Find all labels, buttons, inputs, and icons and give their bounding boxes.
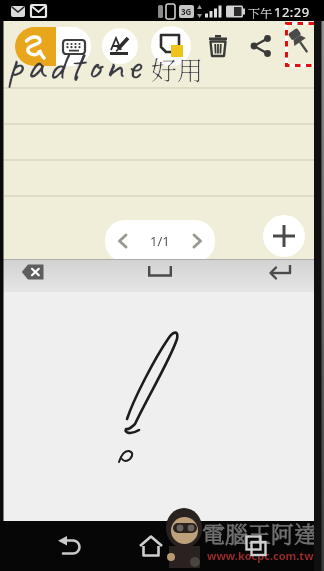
button[interactable]: 1/1 — [105, 220, 215, 262]
staticText: 電腦王阿達 — [202, 517, 317, 550]
button[interactable] — [243, 28, 278, 63]
button[interactable] — [14, 257, 52, 287]
button[interactable] — [260, 256, 300, 286]
button[interactable] — [151, 26, 191, 66]
button[interactable] — [263, 215, 305, 257]
button[interactable] — [15, 27, 56, 66]
button[interactable] — [285, 22, 318, 67]
button[interactable] — [236, 525, 276, 567]
staticText: 3G — [181, 6, 192, 17]
staticText: 12:29 — [274, 3, 310, 21]
button[interactable] — [48, 525, 88, 567]
button[interactable] — [200, 28, 235, 63]
staticText: padtone — [7, 40, 145, 92]
button[interactable] — [131, 525, 171, 567]
button[interactable] — [56, 27, 91, 66]
button[interactable] — [138, 256, 182, 286]
staticText: 下午 — [248, 4, 273, 21]
staticText: www.kocpc.com.tw — [207, 548, 314, 563]
button[interactable] — [102, 28, 138, 64]
staticText: 1/1 — [150, 232, 170, 250]
staticText: 好用 — [151, 50, 204, 87]
